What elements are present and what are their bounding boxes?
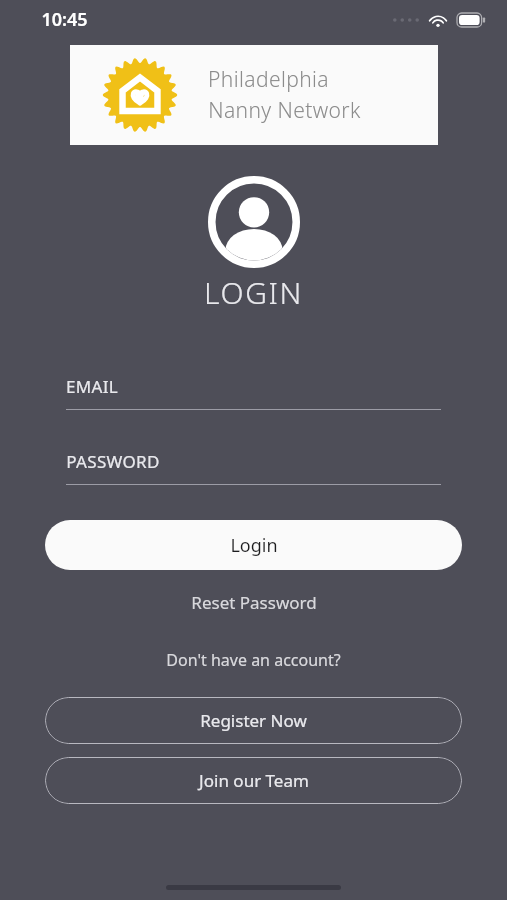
button[interactable]: Register Now — [45, 697, 462, 744]
staticText: LOGIN — [204, 272, 303, 313]
staticText: EMAIL — [66, 375, 118, 398]
staticText: PASSWORD — [66, 450, 160, 473]
button[interactable]: Reset Password — [0, 591, 507, 614]
button[interactable]: PASSWORD — [66, 450, 441, 485]
other: Account — [208, 176, 300, 268]
staticText: Don't have an account? — [166, 649, 341, 671]
staticText: Reset Password — [191, 591, 317, 614]
button[interactable]: Join our Team — [45, 757, 462, 804]
staticText: Join our Team — [199, 769, 309, 792]
button[interactable]: Login — [45, 520, 462, 570]
staticText: Philadelphia — [208, 65, 329, 94]
staticText: Nanny Network — [208, 96, 361, 125]
staticText: 10:45 — [41, 7, 88, 32]
staticText: Register Now — [200, 709, 307, 732]
staticText: Login — [230, 533, 278, 558]
button[interactable]: EMAIL — [66, 375, 441, 410]
